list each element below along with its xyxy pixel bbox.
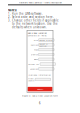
staticText: Location: [30, 68, 38, 70]
staticText: to the network location. Use the: [8, 22, 58, 25]
staticText: Site: [34, 39, 38, 41]
staticText: 6: [39, 102, 41, 105]
staticText: 1. Run the LIMS software.: [8, 12, 43, 15]
staticText: 2. Select a site and section here.: [8, 16, 54, 18]
staticText: Device: [31, 53, 38, 55]
staticText: defaults when unknown.: [8, 26, 47, 28]
staticText: Network Tools Service – Work Instruction: [18, 1, 61, 4]
button[interactable]: Submit: [28, 87, 52, 91]
staticText: Complete all fields.: [27, 34, 47, 36]
staticText: Section: [31, 44, 38, 46]
staticText: Circuit ID: [28, 63, 39, 65]
staticText: Notes:: [8, 9, 17, 11]
staticText: Select a site: [39, 39, 52, 41]
staticText: Submit: [36, 88, 43, 90]
staticText: Select a section: [39, 43, 47, 47]
staticText: Type: [34, 49, 38, 51]
staticText: Optional information: [28, 74, 50, 76]
staticText: Figure 3: Add a New Location form: [22, 95, 58, 97]
staticText: Rack: [34, 58, 38, 60]
staticText: Add a new Location: [27, 32, 46, 34]
staticText: Note Search: [28, 77, 34, 81]
staticText: 3. Change other fields if applicable: [8, 19, 59, 22]
